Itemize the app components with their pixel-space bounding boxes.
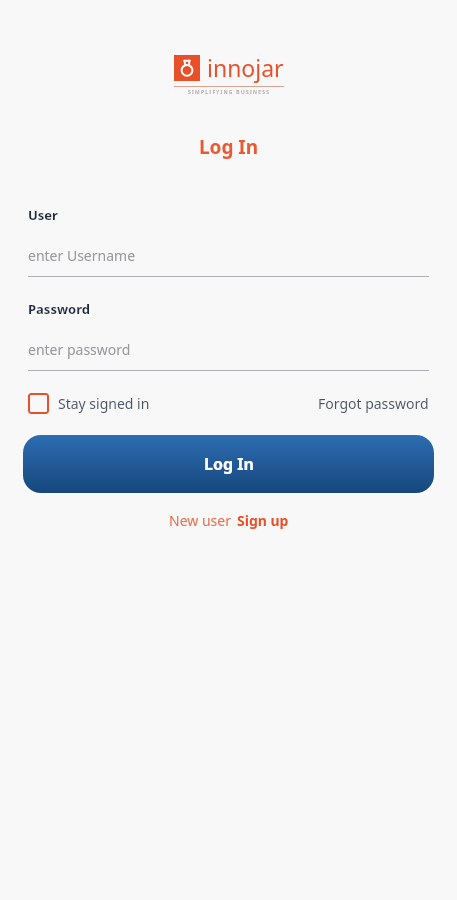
button[interactable]: Stay signed in xyxy=(28,393,150,414)
staticText: S I M P L I F Y I N G B U S I N E S S xyxy=(188,89,270,96)
staticText: Log In xyxy=(0,134,457,160)
button[interactable]: Forgot password xyxy=(318,394,429,413)
staticText: innojar xyxy=(207,52,284,83)
staticText: User xyxy=(28,206,58,224)
staticText: enter password xyxy=(28,340,131,359)
staticText: Forgot password xyxy=(318,394,429,413)
staticText: New user xyxy=(169,511,231,530)
staticText: Log In xyxy=(204,453,254,475)
staticText: Stay signed in xyxy=(58,394,150,413)
staticText: Sign up xyxy=(237,511,289,530)
button[interactable]: Sign up xyxy=(237,511,289,530)
button[interactable]: enter Username xyxy=(28,246,429,265)
staticText: Password xyxy=(28,300,90,318)
staticText: enter Username xyxy=(28,246,136,265)
other: Innojar logo xyxy=(174,55,200,81)
button[interactable]: Log In xyxy=(23,435,434,493)
button[interactable]: enter password xyxy=(28,340,429,359)
